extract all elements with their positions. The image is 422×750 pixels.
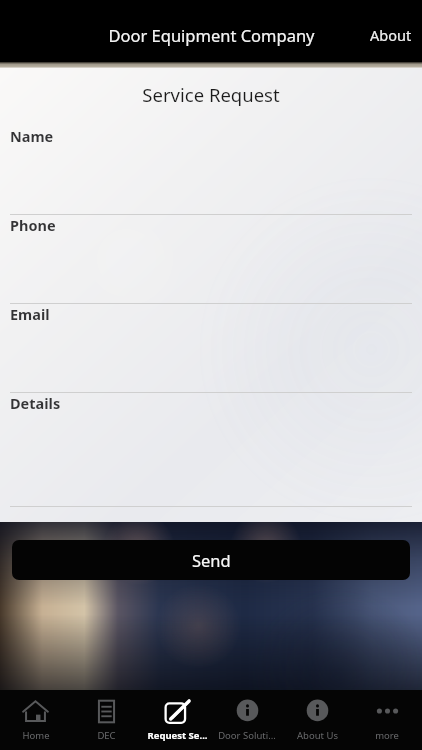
staticText: Door Soluti... <box>218 729 276 742</box>
staticText: DEC <box>97 729 116 742</box>
staticText: About Us <box>297 729 338 742</box>
button[interactable]: Home <box>0 690 71 750</box>
button[interactable]: Request Se... <box>142 690 212 750</box>
button[interactable]: Door Soluti... <box>212 690 282 750</box>
staticText: Phone <box>10 215 56 235</box>
staticText: Home <box>22 729 50 742</box>
staticText: Service Request <box>0 82 422 107</box>
staticText: Email <box>10 304 50 324</box>
staticText: Send <box>192 549 231 571</box>
staticText: more <box>375 729 399 742</box>
button[interactable]: more <box>352 690 422 750</box>
button[interactable]: DEC <box>71 690 142 750</box>
staticText: About <box>370 25 412 45</box>
staticText: Door Equipment Company <box>108 24 315 46</box>
button[interactable]: About <box>360 19 422 51</box>
button[interactable]: Send <box>12 540 410 580</box>
staticText: Name <box>10 126 54 146</box>
staticText: Request Se... <box>147 729 208 742</box>
staticText: Details <box>10 393 61 413</box>
button[interactable]: About Us <box>282 690 352 750</box>
